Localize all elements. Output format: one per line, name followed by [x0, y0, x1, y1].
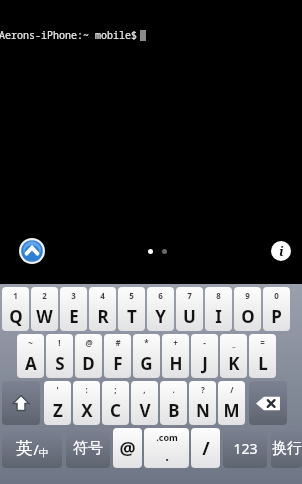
- staticText: /: [230, 384, 234, 395]
- staticText: #: [115, 337, 121, 348]
- button[interactable]: 6: [147, 287, 174, 331]
- staticText: ~: [28, 337, 33, 348]
- button[interactable]: 2: [31, 287, 58, 331]
- button[interactable]: *: [133, 334, 160, 378]
- staticText: 123: [233, 439, 258, 458]
- button[interactable]: Shift: [2, 381, 40, 425]
- staticText: i: [279, 242, 284, 260]
- staticText: ?: [201, 384, 205, 395]
- button[interactable]: .com: [144, 428, 189, 468]
- button[interactable]: ;: [102, 381, 129, 425]
- staticText: U: [183, 305, 196, 328]
- staticText: C: [110, 399, 121, 422]
- staticText: .: [172, 384, 175, 395]
- staticText: X: [81, 399, 93, 422]
- staticText: +: [173, 337, 178, 348]
- staticText: -: [203, 337, 206, 348]
- button[interactable]: ~: [17, 334, 44, 378]
- staticText: 2: [42, 290, 47, 301]
- button[interactable]: ,: [131, 381, 158, 425]
- staticText: V: [139, 399, 151, 422]
- button[interactable]: 4: [89, 287, 116, 331]
- button[interactable]: ?: [189, 381, 216, 425]
- staticText: 中: [39, 446, 49, 459]
- staticText: Aerons-iPhone:~ mobile$: [0, 28, 137, 42]
- staticText: 4: [100, 290, 105, 301]
- staticText: .: [165, 447, 169, 465]
- button[interactable]: @: [75, 334, 102, 378]
- staticText: @: [85, 337, 93, 348]
- button[interactable]: -: [191, 334, 218, 378]
- staticText: .com: [156, 431, 178, 443]
- staticText: I: [215, 305, 222, 328]
- staticText: 9: [245, 290, 250, 301]
- staticText: 1: [13, 290, 18, 301]
- staticText: 英: [16, 438, 33, 459]
- button[interactable]: =: [249, 334, 276, 378]
- button[interactable]: _: [220, 334, 247, 378]
- staticText: !: [58, 337, 61, 348]
- staticText: 7: [187, 290, 192, 301]
- staticText: B: [168, 399, 180, 422]
- staticText: S: [55, 352, 65, 375]
- staticText: =: [260, 337, 265, 348]
- staticText: R: [97, 305, 109, 328]
- staticText: 3: [71, 290, 76, 301]
- button[interactable]: 123: [223, 428, 267, 468]
- button[interactable]: 换行: [271, 428, 302, 468]
- staticText: @: [119, 436, 136, 461]
- staticText: P: [271, 305, 282, 328]
- staticText: /: [33, 440, 39, 459]
- staticText: J: [202, 352, 208, 375]
- button[interactable]: #: [104, 334, 131, 378]
- staticText: E: [69, 305, 79, 328]
- staticText: 6: [158, 290, 163, 301]
- button[interactable]: 9: [234, 287, 261, 331]
- button[interactable]: 符号: [66, 428, 110, 468]
- staticText: W: [36, 305, 53, 328]
- button[interactable]: Switch language: [2, 428, 62, 468]
- button[interactable]: 8: [205, 287, 232, 331]
- staticText: 换行: [272, 439, 302, 458]
- staticText: H: [169, 352, 183, 375]
- button[interactable]: /: [218, 381, 245, 425]
- staticText: G: [140, 352, 153, 375]
- staticText: F: [113, 352, 123, 375]
- button[interactable]: :: [73, 381, 100, 425]
- button[interactable]: !: [46, 334, 73, 378]
- staticText: L: [258, 352, 268, 375]
- staticText: Q: [9, 305, 23, 328]
- staticText: 5: [129, 290, 134, 301]
- staticText: _: [232, 337, 236, 348]
- staticText: ,: [143, 384, 146, 395]
- staticText: K: [228, 352, 240, 375]
- staticText: ': [56, 384, 59, 395]
- button[interactable]: /: [191, 428, 220, 468]
- button[interactable]: Backspace: [249, 381, 287, 425]
- staticText: 符号: [73, 439, 103, 458]
- staticText: *: [144, 337, 149, 348]
- staticText: O: [241, 305, 255, 328]
- staticText: N: [196, 399, 210, 422]
- button[interactable]: ': [44, 381, 71, 425]
- button[interactable]: 5: [118, 287, 145, 331]
- staticText: 8: [216, 290, 221, 301]
- button[interactable]: Info: [271, 241, 291, 261]
- button[interactable]: .: [160, 381, 187, 425]
- button[interactable]: 0: [263, 287, 290, 331]
- staticText: A: [25, 352, 37, 375]
- staticText: 0: [274, 290, 279, 301]
- staticText: /: [202, 436, 210, 461]
- staticText: Z: [53, 399, 63, 422]
- button[interactable]: 3: [60, 287, 87, 331]
- staticText: T: [127, 305, 137, 328]
- button[interactable]: Show more keys: [19, 238, 45, 264]
- button[interactable]: 1: [2, 287, 29, 331]
- button[interactable]: +: [162, 334, 189, 378]
- button[interactable]: @: [113, 428, 142, 468]
- staticText: Y: [155, 305, 166, 328]
- staticText: M: [223, 399, 240, 422]
- staticText: D: [82, 352, 95, 375]
- button[interactable]: 7: [176, 287, 203, 331]
- staticText: ;: [114, 384, 117, 395]
